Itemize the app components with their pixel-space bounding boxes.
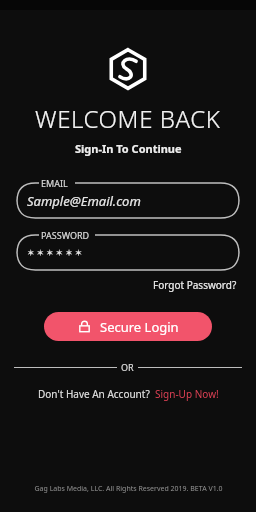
staticText: Forgot Password? — [153, 278, 237, 292]
staticText: EMAIL — [41, 177, 68, 189]
staticText: Secure Login — [100, 318, 179, 336]
button[interactable]: Sign-Up Now! — [155, 387, 219, 401]
staticText: Sign-In To Continue — [75, 141, 182, 156]
staticText: Sign-Up Now! — [155, 387, 219, 401]
staticText: Don't Have An Account? — [38, 387, 150, 401]
button[interactable]: Forgot Password? — [151, 276, 239, 294]
staticText: ✶✶✶✶✶✶ — [27, 248, 85, 258]
staticText: OR — [121, 361, 134, 373]
staticText: Sample@Email.com — [27, 192, 141, 210]
staticText: PASSWORD — [41, 229, 90, 241]
staticText: WELCOME BACK — [35, 102, 221, 135]
staticText: Gag Labs Media, LLC. All Rights Reserved… — [34, 484, 223, 494]
button[interactable]: Secure Login — [44, 312, 212, 341]
